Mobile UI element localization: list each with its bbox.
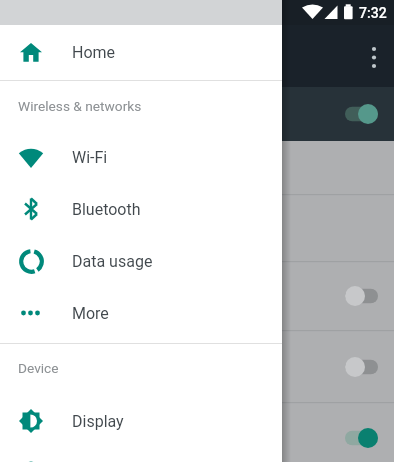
staticText: Device — [18, 360, 59, 376]
button[interactable]: Bluetooth — [0, 183, 282, 235]
button[interactable]: Wi-Fi — [0, 131, 282, 183]
staticText: Wireless & networks — [18, 98, 142, 114]
staticText: Display — [72, 412, 124, 431]
staticText: 7:32 — [359, 5, 387, 21]
staticText: Data usage — [72, 252, 153, 271]
staticText: More — [72, 304, 109, 323]
button[interactable]: Data usage — [0, 235, 282, 287]
button[interactable]: More — [0, 287, 282, 339]
staticText: Home — [72, 43, 116, 62]
button[interactable]: Display — [0, 395, 282, 447]
button[interactable]: Home — [0, 25, 282, 80]
staticText: Wi-Fi — [72, 148, 108, 167]
staticText: Bluetooth — [72, 200, 141, 219]
